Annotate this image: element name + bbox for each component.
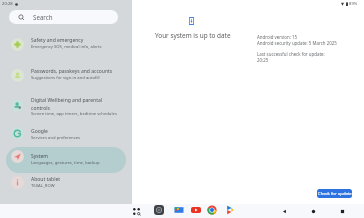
button[interactable]: System	[6, 147, 126, 173]
button[interactable]: About tablet	[6, 169, 126, 195]
staticText: Google	[31, 128, 48, 135]
button[interactable]: Search	[9, 10, 118, 24]
staticText: Screen time, app timers, bedtime schedul…	[31, 111, 117, 117]
button[interactable]: Google	[6, 118, 126, 144]
staticText: Your system is up to date	[155, 31, 231, 40]
button[interactable]: Home	[308, 204, 318, 218]
staticText: System	[31, 153, 48, 160]
button[interactable]: YouTube	[190, 203, 201, 217]
staticText: Last successful check for update:	[257, 51, 325, 57]
staticText: Passwords, passkeys and accounts	[31, 68, 113, 75]
button[interactable]: Safety and emergency	[6, 31, 126, 57]
staticText: Check for update	[318, 191, 352, 197]
button[interactable]: Check for update	[317, 189, 352, 198]
staticText: 89%	[349, 1, 358, 7]
staticText: Search	[33, 13, 53, 21]
staticText: Android security update: 5 March 2025	[257, 40, 337, 46]
staticText: Digital Wellbeing and parental controls	[31, 97, 103, 111]
staticText: Emergency SOS, medical info, alerts	[31, 44, 102, 50]
button[interactable]: Recents	[337, 204, 347, 218]
staticText: Languages, gestures, time, backup	[31, 160, 100, 166]
button[interactable]: Passwords, passkeys and accounts	[6, 62, 126, 88]
staticText: 20:28	[2, 1, 13, 7]
staticText: About tablet	[31, 176, 61, 183]
staticText: Android version: 15	[257, 34, 298, 40]
staticText: Safety and emergency	[31, 37, 84, 44]
staticText: Services and preferences	[31, 135, 81, 141]
staticText: T60AL_ROW	[31, 183, 55, 189]
staticText: 20:25	[257, 57, 269, 63]
button[interactable]: Chrome	[206, 203, 217, 217]
staticText: Suggestions for sign-in and autofill	[31, 75, 100, 81]
button[interactable]: Digital Wellbeing and parental controls	[6, 92, 126, 118]
button[interactable]: Play Store	[224, 203, 235, 217]
button[interactable]: Photos	[173, 203, 184, 217]
button[interactable]: Camera	[153, 203, 164, 217]
button[interactable]: All apps	[131, 206, 142, 217]
button[interactable]: Back	[279, 204, 289, 218]
